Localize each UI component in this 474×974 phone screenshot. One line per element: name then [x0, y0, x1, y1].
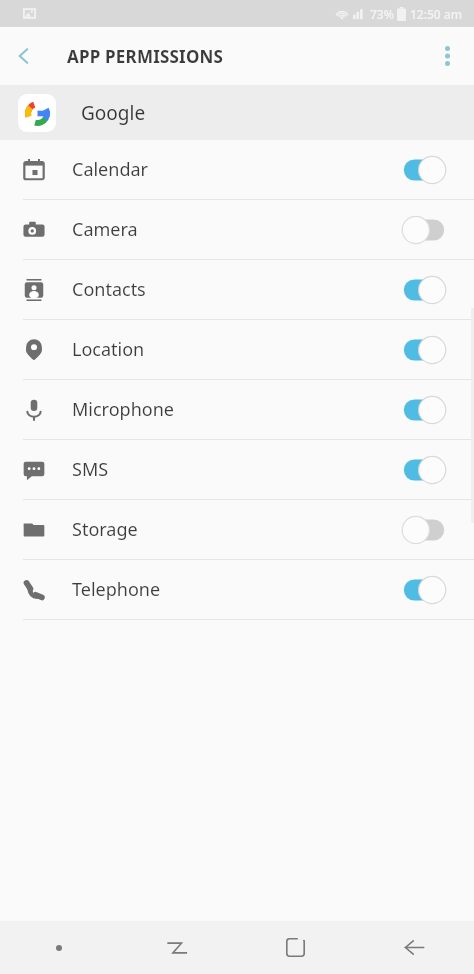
button[interactable]: Camera	[0, 200, 474, 259]
button[interactable]: Menu indicator	[0, 921, 118, 974]
button[interactable]: Microphone	[0, 380, 474, 439]
button[interactable]: Telephone	[0, 560, 474, 619]
button[interactable]: Google	[0, 85, 474, 140]
button[interactable]: Telephone permission toggle	[400, 573, 448, 607]
staticText: 73%	[370, 6, 394, 22]
button[interactable]: Contacts permission toggle	[400, 273, 448, 307]
button[interactable]: Location	[0, 320, 474, 379]
button[interactable]: Back	[0, 32, 48, 80]
button[interactable]: Calendar permission toggle	[400, 153, 448, 187]
button[interactable]: Storage permission toggle	[400, 513, 448, 547]
staticText: Camera	[72, 217, 400, 242]
staticText: Calendar	[72, 157, 400, 182]
button[interactable]: Back	[355, 921, 474, 974]
staticText: Google	[81, 100, 146, 126]
button[interactable]: Recents	[118, 921, 236, 974]
button[interactable]: Calendar	[0, 140, 474, 199]
button[interactable]: Storage	[0, 500, 474, 559]
staticText: SMS	[72, 457, 400, 482]
staticText: Contacts	[72, 277, 400, 302]
staticText: 12:50 am	[410, 6, 463, 22]
button[interactable]: More options	[423, 32, 471, 80]
button[interactable]: Camera permission toggle	[400, 213, 448, 247]
staticText: Storage	[72, 517, 400, 542]
button[interactable]: Contacts	[0, 260, 474, 319]
button[interactable]: SMS	[0, 440, 474, 499]
staticText: Telephone	[72, 577, 400, 602]
staticText: Location	[72, 337, 400, 362]
staticText: APP PERMISSIONS	[67, 45, 224, 68]
button[interactable]: Home	[236, 921, 355, 974]
staticText: Microphone	[72, 397, 400, 422]
button[interactable]: Microphone permission toggle	[400, 393, 448, 427]
button[interactable]: SMS permission toggle	[400, 453, 448, 487]
button[interactable]: Location permission toggle	[400, 333, 448, 367]
